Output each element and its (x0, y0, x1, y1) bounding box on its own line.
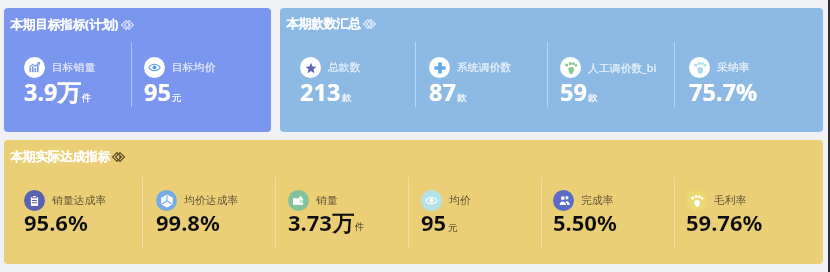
button[interactable]: 本期目标指标(计划) (4, 8, 271, 132)
staticText: 款 (457, 92, 467, 104)
other: Expand (363, 19, 376, 29)
staticText: 99.8% (156, 207, 220, 237)
staticText: 95 (144, 76, 171, 108)
staticText: 人工调价数_bi (588, 60, 657, 75)
staticText: 款 (342, 92, 352, 104)
button[interactable]: 本期实际达成指标 (4, 140, 823, 264)
staticText: 75.7% (689, 76, 758, 108)
button[interactable]: 完成率 (553, 190, 614, 211)
staticText: 目标均价 (172, 61, 216, 75)
staticText: 均价 (449, 194, 471, 208)
staticText: 件 (82, 92, 92, 104)
staticText: 件 (355, 221, 365, 233)
button[interactable]: 销量达成率 (24, 190, 106, 211)
button[interactable]: 本期款数汇总 (286, 16, 376, 32)
button[interactable]: 采纳率 (689, 57, 750, 78)
staticText: 59 (560, 76, 587, 108)
button[interactable]: 系统调价数 (429, 57, 511, 78)
staticText: 销量达成率 (52, 194, 106, 208)
button[interactable]: 总款数 (300, 57, 361, 78)
staticText: 采纳率 (717, 61, 750, 75)
staticText: 元 (448, 222, 458, 234)
staticText: 87 (429, 76, 456, 108)
staticText: 完成率 (581, 194, 614, 208)
staticText: 59.76% (686, 207, 763, 237)
button[interactable]: 销量 (288, 190, 338, 211)
button[interactable]: 本期款数汇总 (280, 8, 823, 132)
staticText: 销量 (316, 194, 338, 208)
staticText: 毛利率 (714, 194, 747, 208)
staticText: 3.73万 (288, 207, 354, 237)
button[interactable]: 均价 (421, 190, 471, 211)
other: Expand (112, 152, 125, 162)
other: Expand (121, 20, 134, 30)
staticText: 3.9万 (24, 76, 81, 108)
staticText: 均价达成率 (184, 194, 238, 208)
staticText: 系统调价数 (457, 61, 511, 75)
button[interactable]: 本期目标指标(计划) (10, 16, 134, 33)
button[interactable]: 均价达成率 (156, 190, 238, 211)
button[interactable]: 人工调价数_bi (560, 57, 657, 78)
staticText: 95 (421, 207, 447, 237)
staticText: 目标销量 (52, 61, 96, 75)
staticText: 元 (172, 92, 182, 104)
button[interactable]: 目标销量 (24, 57, 96, 78)
staticText: 款 (588, 92, 598, 104)
button[interactable]: 毛利率 (686, 190, 747, 211)
staticText: 本期实际达成指标 (10, 149, 110, 165)
staticText: 本期款数汇总 (286, 16, 361, 32)
staticText: 5.50% (553, 207, 617, 237)
staticText: 本期目标指标(计划) (10, 16, 119, 33)
staticText: 95.6% (24, 207, 88, 237)
staticText: 总款数 (328, 61, 361, 75)
button[interactable]: 本期实际达成指标 (10, 149, 125, 165)
staticText: 213 (300, 76, 341, 108)
button[interactable]: 目标均价 (144, 57, 216, 78)
